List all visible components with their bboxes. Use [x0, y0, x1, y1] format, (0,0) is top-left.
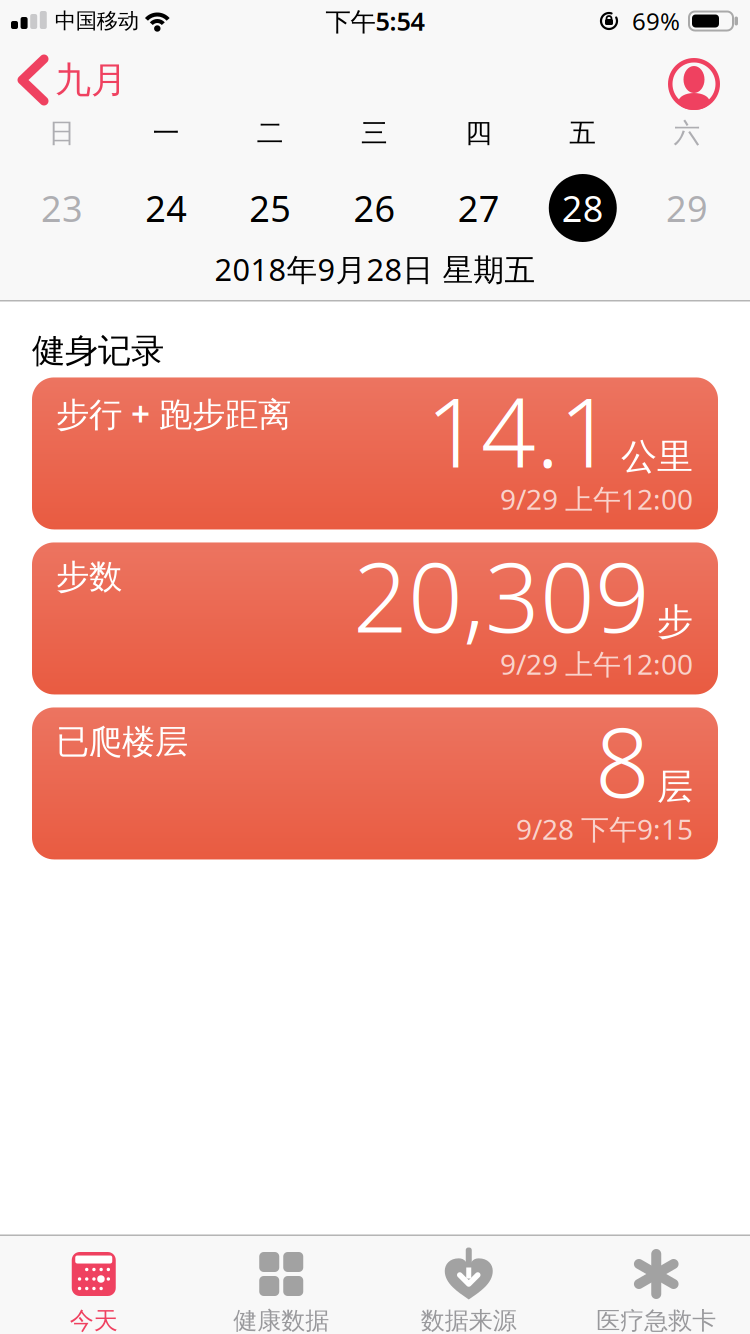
button[interactable]: 步数 [32, 542, 718, 694]
staticText: 25 [249, 184, 291, 232]
staticText: 层 [657, 765, 693, 809]
staticText: 二 [257, 117, 284, 149]
staticText: 24 [145, 184, 187, 232]
staticText: 69% [632, 5, 680, 37]
staticText: 29 [666, 184, 708, 232]
staticText: 四 [465, 117, 492, 149]
staticText: 9/29 上午12:00 [500, 645, 693, 682]
staticText: 20,309 [353, 531, 650, 659]
button[interactable]: 24 [114, 166, 218, 250]
button[interactable] [668, 54, 750, 106]
staticText: 六 [673, 117, 700, 149]
staticText: 五 [569, 117, 596, 149]
staticText: 14.1 [426, 366, 614, 494]
staticText: 日 [49, 117, 76, 149]
staticText: 数据来源 [421, 1306, 517, 1334]
button[interactable]: 健康数据 [187, 1236, 375, 1334]
button[interactable]: 25 [218, 166, 322, 250]
staticText: 步 [657, 600, 693, 644]
button[interactable]: 医疗急救卡 [562, 1236, 750, 1334]
staticText: 23 [41, 184, 83, 232]
staticText: 健康数据 [233, 1306, 329, 1334]
button[interactable]: 27 [427, 166, 531, 250]
staticText: 28 [562, 184, 604, 232]
staticText: 步数 [56, 556, 122, 597]
button[interactable]: 23 [10, 166, 114, 250]
staticText: 9/28 下午9:15 [516, 810, 693, 847]
staticText: 今天 [70, 1306, 118, 1334]
staticText: 九月 [55, 58, 127, 102]
button[interactable]: 步行 + 跑步距离 [32, 377, 718, 529]
staticText: 2018年9月28日 星期五 [214, 249, 535, 289]
button[interactable]: 已爬楼层 [32, 707, 718, 859]
staticText: 中国移动 [55, 8, 139, 34]
button[interactable]: 26 [322, 166, 426, 250]
staticText: 公里 [621, 435, 693, 479]
staticText: 一 [153, 117, 180, 149]
staticText: 27 [458, 184, 500, 232]
button[interactable]: 29 [635, 166, 739, 250]
staticText: 26 [353, 184, 395, 232]
staticText: 已爬楼层 [56, 721, 188, 762]
staticText: 下午5:54 [325, 4, 424, 38]
button[interactable]: 九月 [0, 58, 127, 102]
staticText: 步行 + 跑步距离 [56, 391, 291, 436]
staticText: 医疗急救卡 [596, 1306, 716, 1334]
button[interactable]: 数据来源 [375, 1236, 562, 1334]
button[interactable]: 今天 [0, 1236, 187, 1334]
staticText: 9/29 上午12:00 [500, 480, 693, 517]
button[interactable]: 28 [531, 166, 635, 250]
staticText: 三 [361, 117, 388, 149]
staticText: 8 [595, 696, 650, 824]
staticText: 健身记录 [32, 330, 164, 371]
